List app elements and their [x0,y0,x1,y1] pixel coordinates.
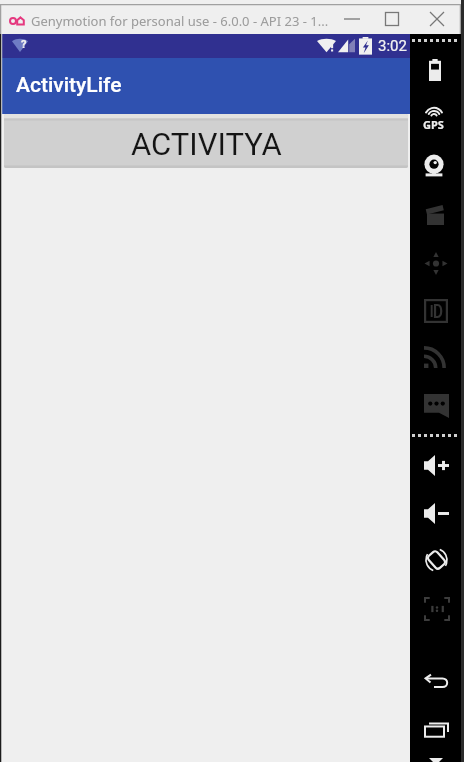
button[interactable]: Identifiers [410,287,461,335]
button[interactable]: Minimize [337,4,367,34]
staticText: Genymotion for personal use - 6.0.0 - AP… [31,12,329,30]
staticText: ? [21,38,27,51]
button[interactable]: Recent apps [410,706,461,754]
button[interactable]: ACTIVITYA [4,114,408,168]
button[interactable]: Volume down [410,489,461,537]
staticText: GPS [423,117,444,132]
button[interactable]: Scale 1:1 [410,585,461,633]
button[interactable]: Network [410,333,461,381]
button[interactable]: Maximize [377,4,407,34]
button[interactable]: Battery [410,46,461,94]
staticText: ACTIVITYA [131,126,282,162]
button[interactable]: Volume up [410,441,461,489]
button[interactable]: Video recording [410,190,461,238]
staticText: ActivityLife [16,73,122,98]
button[interactable]: SMS [410,382,461,430]
button[interactable]: Close [422,4,452,34]
button[interactable]: More options [410,748,461,762]
button[interactable]: Rotate [410,536,461,584]
button[interactable]: Back [410,657,461,705]
staticText: 3:02 [378,37,407,55]
button[interactable]: Accelerometer [410,239,461,287]
button[interactable]: Camera [410,142,461,190]
button[interactable]: GPS [410,94,461,142]
